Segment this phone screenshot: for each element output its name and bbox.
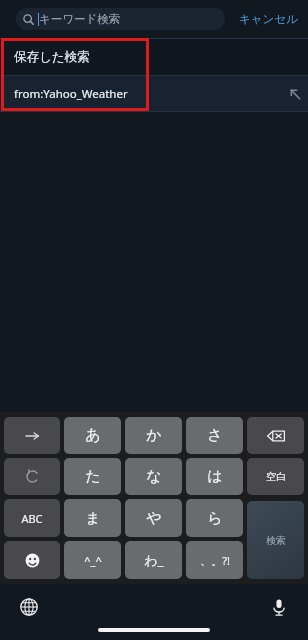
button[interactable]: ら [186, 499, 243, 537]
staticText: キャンセル [239, 12, 298, 26]
staticText: か [146, 426, 162, 445]
staticText: た [85, 467, 101, 486]
button[interactable]: クエリを入力欄に挿入 [282, 81, 308, 107]
button[interactable]: キーボードを切り替え [14, 592, 44, 622]
staticText: さ [207, 426, 223, 445]
button[interactable]: 検索 [247, 501, 304, 579]
staticText: は [207, 467, 223, 486]
button[interactable]: ま [64, 499, 121, 537]
button[interactable]: や [125, 499, 182, 537]
staticText: ま [85, 509, 101, 528]
button[interactable]: 空白 [247, 458, 304, 495]
button[interactable]: わ_ [125, 541, 182, 579]
staticText: な [146, 467, 162, 486]
button[interactable]: た [64, 458, 121, 495]
button[interactable]: は [186, 458, 243, 495]
staticText: 保存した検索 [14, 49, 90, 65]
staticText: や [146, 509, 162, 528]
button[interactable]: from:Yahoo_Weather [0, 76, 308, 111]
staticText: あ [85, 426, 101, 445]
staticText: 空白 [266, 470, 286, 483]
button[interactable]: ABC [4, 499, 60, 537]
button[interactable]: さ [186, 417, 243, 454]
button[interactable]: キャンセル [233, 8, 304, 30]
button[interactable]: キーワード検索 [16, 8, 225, 30]
staticText: from:Yahoo_Weather [14, 86, 282, 102]
staticText: ABC [21, 511, 43, 526]
staticText: ^_^ [84, 553, 102, 568]
button[interactable]: 、。?! [186, 541, 243, 579]
button[interactable]: な [125, 458, 182, 495]
staticText: 検索 [266, 534, 286, 547]
button[interactable]: 削除 [247, 417, 304, 454]
staticText: ら [207, 509, 223, 528]
button[interactable]: あ [64, 417, 121, 454]
staticText: キーワード検索 [39, 12, 121, 26]
button[interactable]: か [125, 417, 182, 454]
staticText: 、。?! [200, 553, 230, 568]
button[interactable]: 音声入力 [264, 592, 294, 622]
button[interactable]: 取り消し [4, 458, 60, 495]
button[interactable]: 次候補 [4, 417, 60, 454]
staticText: わ_ [144, 551, 164, 569]
button[interactable]: 絵文字 [4, 541, 60, 579]
button[interactable]: ^_^ [64, 541, 121, 579]
